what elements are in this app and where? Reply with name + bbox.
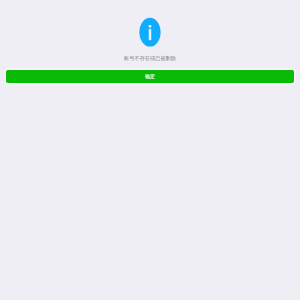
other: Information xyxy=(139,17,161,46)
staticText: 账号不存在或已被删除 xyxy=(124,55,176,62)
staticText: 确定 xyxy=(145,73,155,79)
button[interactable]: 确定 xyxy=(6,70,294,83)
